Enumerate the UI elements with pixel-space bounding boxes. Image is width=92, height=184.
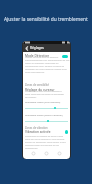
staticText: Mode Détection <box>25 54 50 58</box>
button[interactable]: Mode Détection <box>23 53 70 59</box>
staticText: Activez ce mode afin de détecter automat… <box>25 56 70 74</box>
button[interactable]: Vibration activée <box>23 129 70 135</box>
staticText: Zones de sensibilité <box>25 83 49 87</box>
staticText: Complétez ce réglage de façon à être vib… <box>25 135 68 150</box>
staticText: Choisissez la zone la plus adaptée à vot… <box>25 90 65 99</box>
button[interactable]: Toggle <box>62 55 68 58</box>
staticText: Sensibilité basse (Moins Sensible) <box>25 113 63 116</box>
staticText: Zones de vibration <box>25 126 48 130</box>
button[interactable]: Nav item <box>31 151 36 156</box>
staticText: Sensibilité haute (Plus Sensible) <box>25 100 61 103</box>
button[interactable]: Nav item <box>44 151 49 156</box>
staticText: Réglage du curseur <box>25 88 55 92</box>
button[interactable]: Back <box>23 45 30 52</box>
button[interactable]: Toggle <box>65 130 68 134</box>
button[interactable]: Nav item <box>57 151 62 156</box>
staticText: Vibration activée <box>25 130 51 134</box>
staticText: Ajuster la sensibilité du tremblement <box>4 16 88 23</box>
staticText: Réglages <box>30 46 44 50</box>
